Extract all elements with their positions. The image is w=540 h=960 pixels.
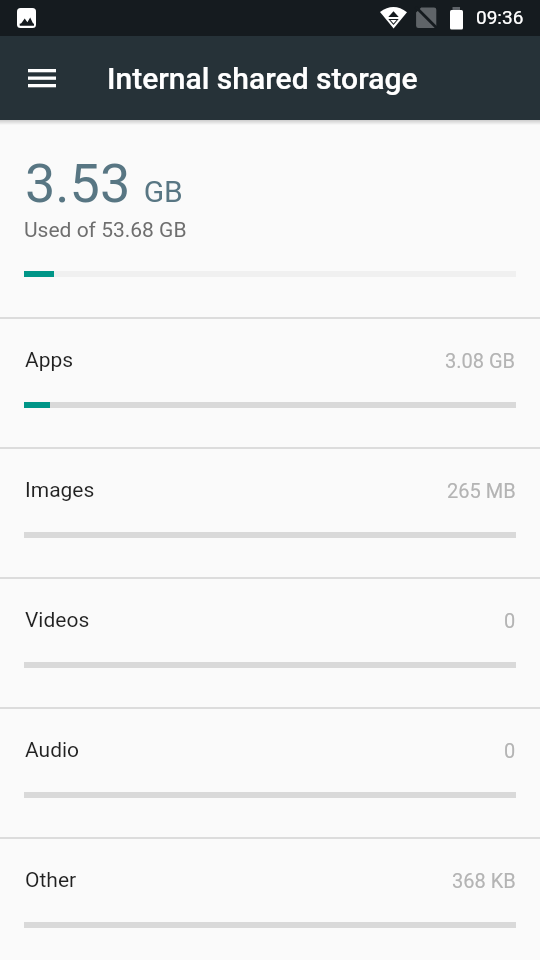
staticText: 368 KB [452, 869, 516, 892]
staticText: 265 MB [447, 479, 516, 502]
staticText: Internal shared storage [107, 61, 418, 96]
staticText: Images [25, 478, 95, 503]
staticText: Audio [25, 738, 80, 763]
staticText: Apps [25, 348, 74, 373]
staticText: Used of 53.68 GB [24, 218, 187, 243]
staticText: 3.08 GB [445, 349, 516, 372]
staticText: Other [25, 868, 77, 893]
staticText: Videos [25, 608, 90, 633]
staticText: 3.53 GB [25, 152, 183, 215]
staticText: 0 [504, 609, 516, 632]
staticText: 0 [504, 739, 516, 762]
staticText: 09:36 [476, 6, 524, 28]
